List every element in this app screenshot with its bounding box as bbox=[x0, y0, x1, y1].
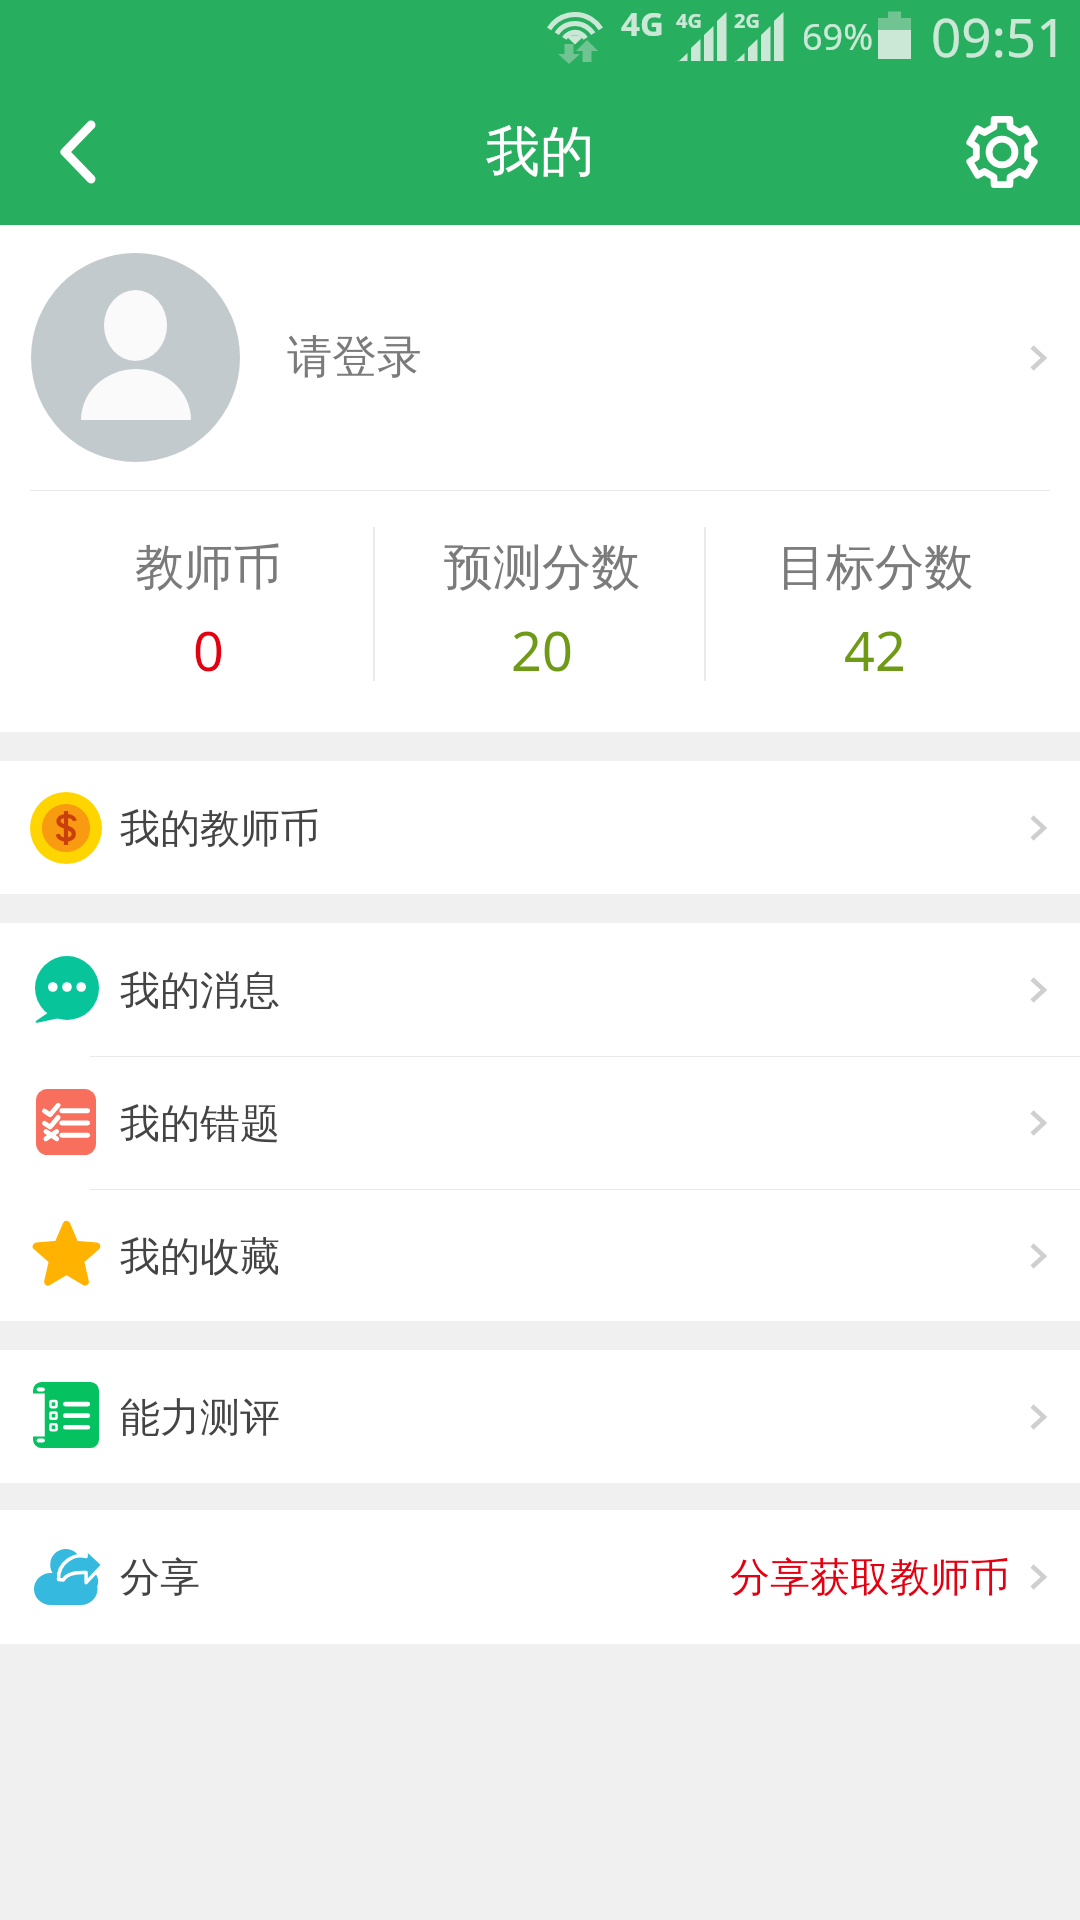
staticText: 教师币 bbox=[135, 537, 282, 599]
button[interactable]: 请登录 bbox=[0, 225, 1080, 490]
staticText: 4G bbox=[676, 7, 702, 34]
staticText: 我的收藏 bbox=[120, 1231, 280, 1281]
staticText: 20 bbox=[511, 613, 573, 687]
button[interactable]: 分享 bbox=[0, 1510, 1080, 1644]
button[interactable]: Back bbox=[20, 94, 136, 210]
staticText: 预测分数 bbox=[444, 537, 640, 599]
button[interactable]: 教师币 bbox=[42, 491, 375, 687]
staticText: 我的错题 bbox=[120, 1098, 280, 1148]
staticText: 请登录 bbox=[287, 329, 422, 386]
button[interactable]: 目标分数 bbox=[708, 491, 1041, 687]
staticText: 分享 bbox=[120, 1552, 200, 1602]
button[interactable]: 能力测评 bbox=[0, 1350, 1080, 1483]
staticText: 42 bbox=[844, 613, 906, 687]
staticText: 目标分数 bbox=[777, 537, 973, 599]
staticText: 分享获取教师币 bbox=[730, 1552, 1010, 1602]
button[interactable]: 我的教师币 bbox=[0, 761, 1080, 894]
staticText: 09:51 bbox=[931, 0, 1067, 72]
staticText: 2G bbox=[734, 7, 760, 34]
button[interactable]: 我的消息 bbox=[0, 923, 1080, 1056]
button[interactable]: 我的错题 bbox=[0, 1057, 1080, 1189]
button[interactable]: 预测分数 bbox=[375, 491, 708, 687]
staticText: 能力测评 bbox=[120, 1392, 280, 1442]
staticText: 0 bbox=[193, 613, 224, 687]
button[interactable]: Settings bbox=[944, 94, 1060, 210]
staticText: 我的消息 bbox=[120, 965, 280, 1015]
staticText: 69% bbox=[802, 12, 874, 61]
staticText: 我的教师币 bbox=[120, 803, 320, 853]
staticText: 我的 bbox=[486, 118, 594, 186]
staticText: 4G bbox=[621, 1, 664, 46]
button[interactable]: 我的收藏 bbox=[0, 1190, 1080, 1321]
